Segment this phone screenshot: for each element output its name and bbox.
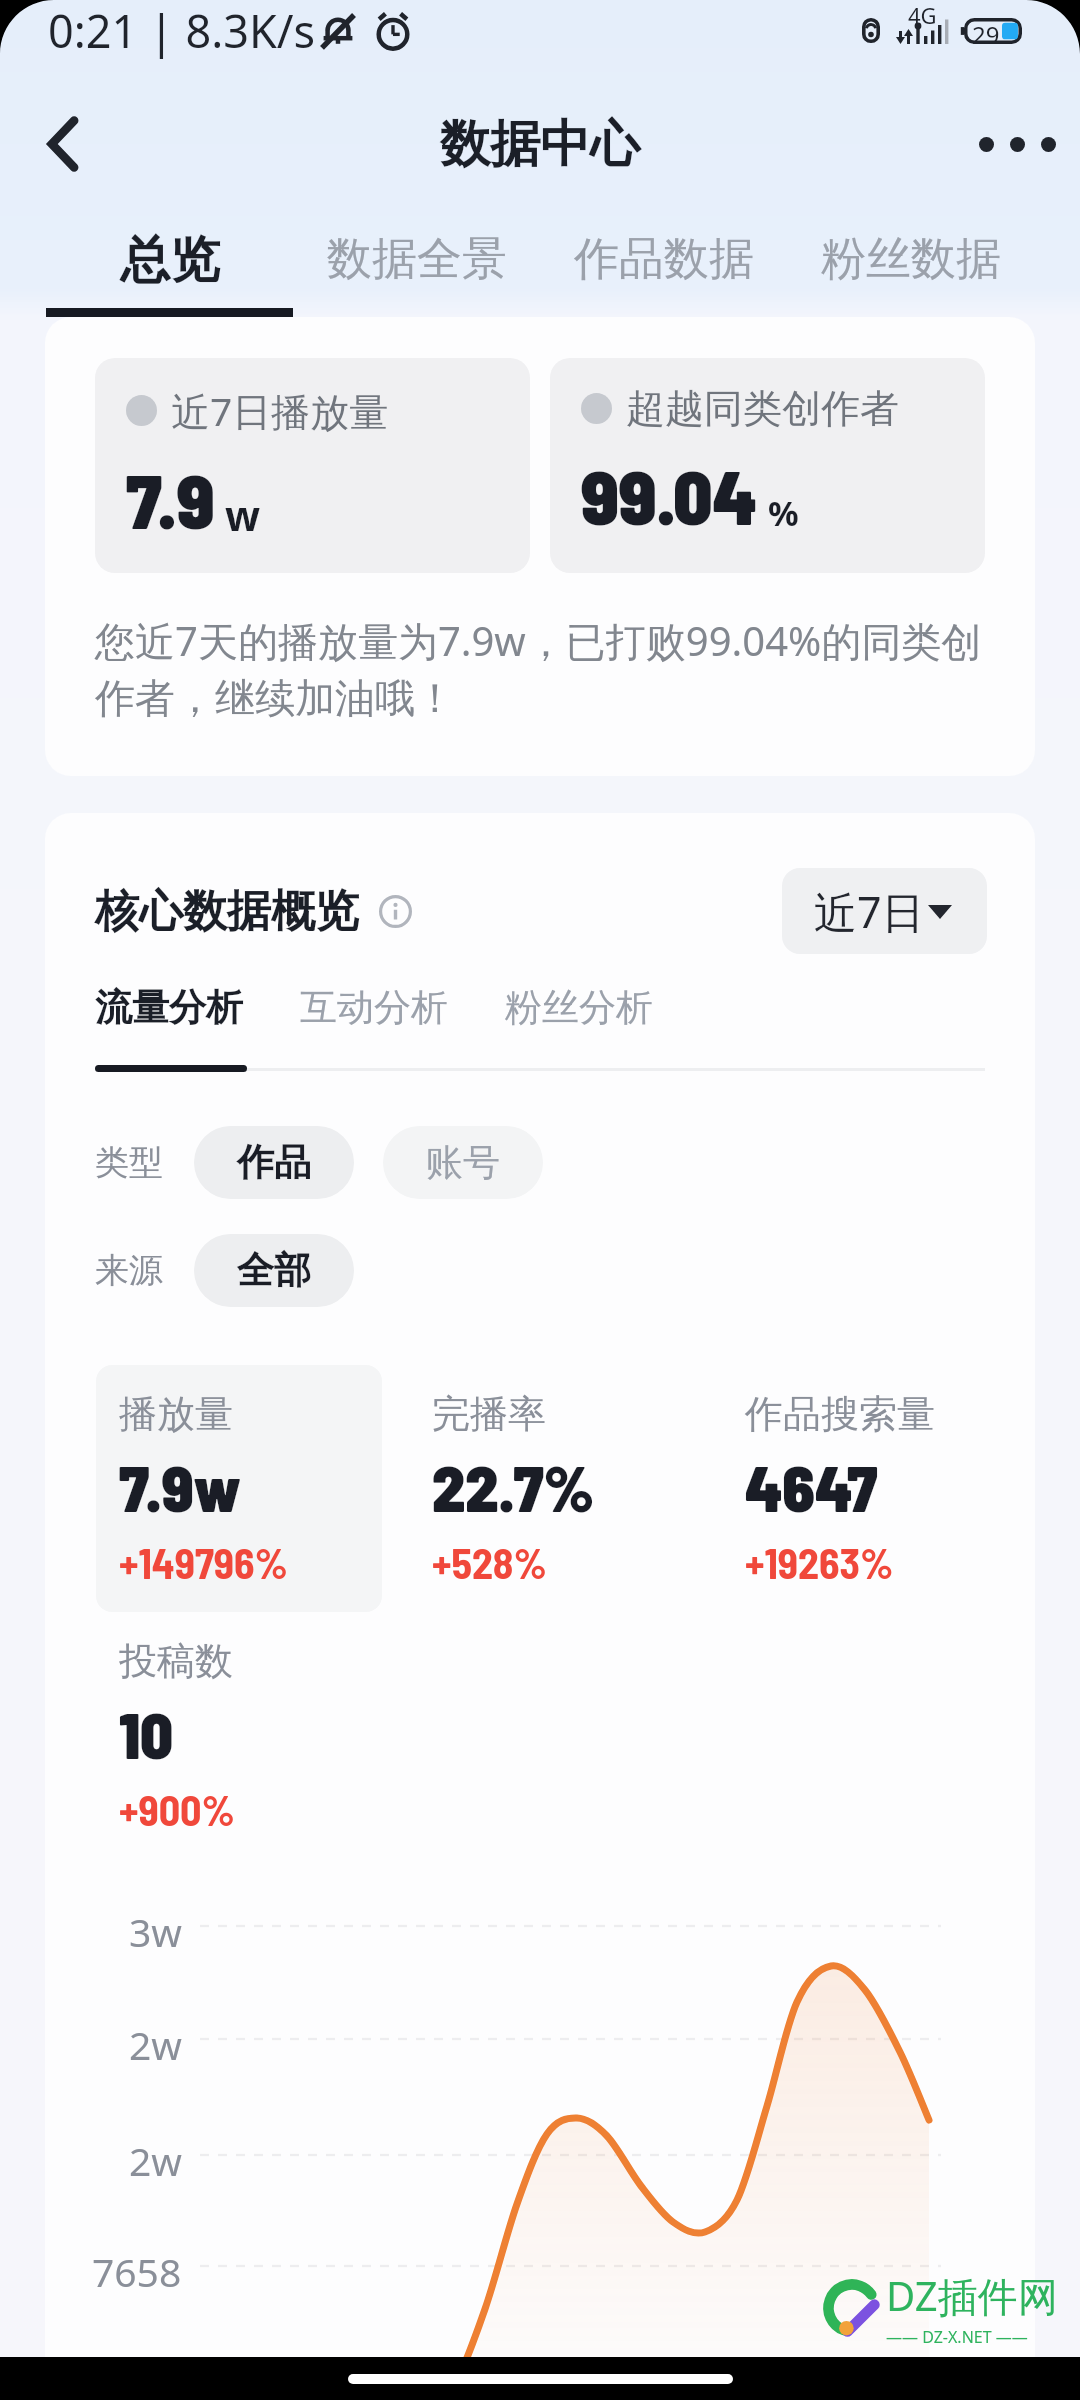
staticText: 2w [129,2134,182,2187]
button[interactable]: 近7日 [782,868,987,954]
button[interactable]: 粉丝数据 [787,192,1034,317]
button[interactable]: 作品数据 [540,192,787,317]
staticText: 数据中心 [440,113,640,176]
staticText: % [768,490,799,536]
button[interactable]: 粉丝分析 [505,984,653,1031]
staticText: +149796% [119,1537,288,1587]
staticText: 99.04 [581,449,758,540]
staticText: 作品 [237,1139,311,1186]
staticText: +19263% [745,1537,894,1587]
button[interactable]: 流量分析 [95,984,243,1031]
staticText: 作品搜索量 [745,1390,935,1438]
button[interactable]: 总览 [46,192,293,317]
staticText: 10 [119,1695,174,1772]
staticText: 您近7天的播放量为7.9w，已打败99.04%的同类创作者，继续加油哦！ [95,612,985,726]
button[interactable]: 作品 [194,1126,354,1199]
button[interactable]: 互动分析 [300,984,448,1031]
staticText: 3w [129,1905,182,1958]
staticText: 账号 [426,1139,500,1186]
staticText: 播放量 [119,1390,233,1438]
staticText: 数据全景 [327,231,507,288]
button[interactable]: 全部 [194,1234,354,1307]
button[interactable]: 作品搜索量 [722,1365,1008,1612]
staticText: 粉丝数据 [821,231,1001,288]
staticText: 全部 [237,1247,311,1294]
staticText: 7658 [92,2245,182,2298]
staticText: 7.9 [126,453,215,544]
staticText: DZ插件网 [886,2268,1058,2323]
staticText: 0:21 | 8.3K/s [48,0,316,61]
staticText: 4G [908,0,937,26]
staticText: 2w [129,2018,182,2071]
staticText: 完播率 [432,1390,546,1438]
staticText: 作品数据 [574,231,754,288]
staticText: +528% [432,1537,547,1587]
button[interactable]: 完播率 [409,1365,695,1612]
staticText: 29 [972,18,1000,44]
staticText: 22.7% [432,1448,594,1525]
staticText: 近7日播放量 [171,384,389,437]
staticText: w [225,487,261,543]
staticText: 总览 [120,229,220,292]
staticText: +900% [119,1784,235,1834]
staticText: 近7日 [814,882,925,941]
staticText: 类型 [95,1141,163,1184]
staticText: 核心数据概览 [95,884,359,939]
staticText: 来源 [95,1249,163,1292]
button[interactable]: More options [969,96,1065,192]
button[interactable]: 账号 [383,1126,543,1199]
button[interactable]: 投稿数 [96,1612,382,1859]
staticText: —— DZ-X.NET —— [886,2326,1028,2348]
button[interactable]: 数据全景 [293,192,540,317]
staticText: 4647 [745,1448,878,1525]
staticText: 7.9w [119,1448,241,1525]
button[interactable]: Back [15,96,111,192]
staticText: 投稿数 [119,1637,233,1685]
button[interactable]: 播放量 [96,1365,382,1612]
staticText: 超越同类创作者 [626,384,899,433]
